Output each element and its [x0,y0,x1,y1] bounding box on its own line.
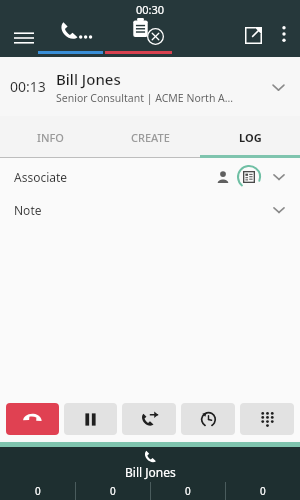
button[interactable]: 0 [226,482,300,500]
button[interactable]: Expand note [266,197,292,223]
staticText: Bill Jones [125,464,176,480]
button[interactable]: LOG [200,116,300,158]
button[interactable]: Dialpad [240,403,294,435]
staticText: LOG [239,130,262,145]
button[interactable]: CREATE [100,116,200,158]
button[interactable]: Bill Jones [0,447,300,482]
button[interactable]: Calls [56,18,100,48]
staticText: 0 [260,484,266,498]
staticText: CREATE [131,130,170,145]
staticText: 0 [110,484,116,498]
staticText: INFO [37,130,64,145]
button[interactable]: Account [236,164,262,190]
button[interactable]: Open in new window [238,20,268,50]
button[interactable]: Call history [181,403,235,435]
staticText: 00:30 [136,2,165,17]
button[interactable]: More options [270,20,298,48]
button[interactable]: 00:13 [0,57,300,116]
button[interactable]: Associate [0,160,300,193]
button[interactable]: Contact [212,166,234,188]
button[interactable]: End call [6,403,59,435]
button[interactable]: 0 [151,482,225,500]
staticText: Note [14,202,42,218]
staticText: 0 [35,484,41,498]
button[interactable]: Expand [264,73,292,101]
staticText: 0 [185,484,191,498]
button[interactable]: 0 [0,482,75,500]
staticText: 00:13 [10,77,46,96]
staticText: Bill Jones [56,69,121,89]
button[interactable]: Hold [64,403,117,435]
button[interactable]: 0 [76,482,150,500]
staticText: Associate [14,169,68,185]
staticText: Senior Consultant | ACME North A… [56,91,234,105]
button[interactable]: Menu [6,20,42,56]
button[interactable]: Note [0,193,300,226]
button[interactable]: Expand associate [266,164,292,190]
button[interactable]: Transfer call [122,403,176,435]
button[interactable]: Tasks [126,16,172,48]
button[interactable]: INFO [0,116,100,158]
